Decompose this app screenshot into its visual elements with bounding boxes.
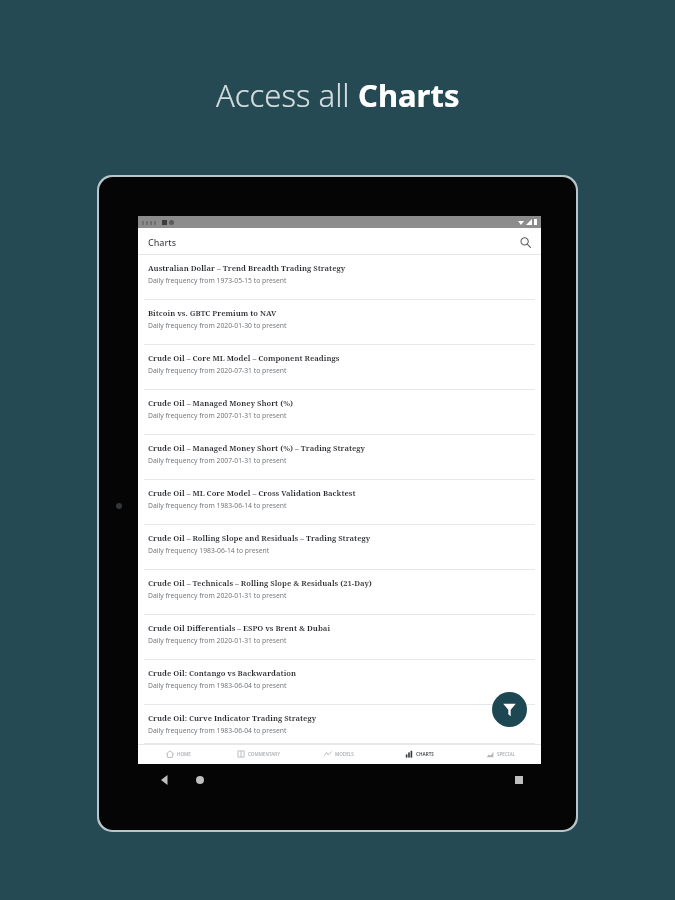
button[interactable]: Bitcoin vs. GBTC Premium to NAV [138,300,541,345]
staticText: SPECIAL [497,751,515,757]
staticText: COMMENTARY [248,751,280,757]
staticText: Australian Dollar – Trend Breadth Tradin… [148,263,346,273]
button[interactable]: MODELS [298,744,379,764]
staticText: Crude Oil – Managed Money Short (%) [148,398,294,408]
button[interactable]: Crude Oil Differentials – ESPO vs Brent … [138,615,541,660]
button[interactable]: Crude Oil: Contango vs Backwardation [138,660,541,705]
staticText: Daily frequency from 1983-06-14 to prese… [148,501,287,510]
staticText: Crude Oil: Contango vs Backwardation [148,668,297,678]
button[interactable]: Crude Oil – Managed Money Short (%) – Tr… [138,435,541,480]
button[interactable]: Crude Oil: Curve Indicator Trading Strat… [138,705,541,744]
staticText: Crude Oil – Managed Money Short (%) – Tr… [148,443,366,453]
staticText: Crude Oil: Curve Indicator Trading Strat… [148,713,317,723]
staticText: Daily frequency from 2020-01-30 to prese… [148,321,287,330]
button[interactable]: HOME [138,744,218,764]
staticText: Daily frequency from 1983-06-04 to prese… [148,681,287,690]
staticText: Charts [358,74,460,116]
button[interactable]: Crude Oil – Managed Money Short (%) [138,390,541,435]
staticText: Daily frequency from 2020-01-31 to prese… [148,636,287,645]
staticText: Crude Oil Differentials – ESPO vs Brent … [148,623,331,633]
staticText: CHARTS [416,751,434,757]
button[interactable]: Crude Oil – ML Core Model – Cross Valida… [138,480,541,525]
staticText: Access all [216,74,358,116]
button[interactable]: COMMENTARY [218,744,298,764]
button[interactable]: Home [196,776,204,784]
button[interactable]: SPECIAL [460,744,541,764]
button[interactable]: CHARTS [379,744,460,764]
staticText: Daily frequency from 2007-01-31 to prese… [148,456,287,465]
staticText: MODELS [335,751,354,757]
button[interactable]: Crude Oil – Technicals – Rolling Slope &… [138,570,541,615]
button[interactable]: Crude Oil – Core ML Model – Component Re… [138,345,541,390]
staticText: Daily frequency from 2020-07-31 to prese… [148,366,287,375]
staticText: Daily frequency from 1983-06-04 to prese… [148,726,287,735]
staticText: Bitcoin vs. GBTC Premium to NAV [148,308,277,318]
button[interactable]: Filter [492,692,527,727]
button[interactable]: Back [160,775,170,785]
button[interactable]: Australian Dollar – Trend Breadth Tradin… [138,255,541,300]
staticText: Daily frequency from 1973-05-15 to prese… [148,276,287,285]
button[interactable]: Crude Oil – Rolling Slope and Residuals … [138,525,541,570]
staticText: Crude Oil – Rolling Slope and Residuals … [148,533,371,543]
staticText: Crude Oil – Technicals – Rolling Slope &… [148,578,372,588]
staticText: HOME [177,751,191,757]
staticText: Crude Oil – Core ML Model – Component Re… [148,353,340,363]
staticText: Crude Oil – ML Core Model – Cross Valida… [148,488,356,498]
staticText: Daily frequency 1983-06-14 to present [148,546,270,555]
staticText: Daily frequency from 2020-01-31 to prese… [148,591,287,600]
button[interactable]: Search [516,233,534,251]
staticText: Charts [148,236,177,248]
staticText: Daily frequency from 2007-01-31 to prese… [148,411,287,420]
